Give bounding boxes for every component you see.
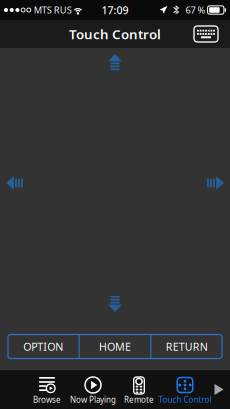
staticText: RETURN xyxy=(166,339,208,354)
staticText: Now Playing xyxy=(70,394,116,405)
button[interactable]: Touch Control xyxy=(162,370,208,409)
staticText: HOME xyxy=(99,339,131,354)
button[interactable]: OPTION xyxy=(8,334,78,358)
staticText: OPTION xyxy=(23,339,63,354)
button[interactable]: Remote xyxy=(116,370,162,409)
staticText: Touch Control xyxy=(69,25,161,43)
staticText: Touch Control xyxy=(158,394,211,405)
staticText: 17:09 xyxy=(101,3,128,17)
button[interactable]: Now Playing xyxy=(70,370,116,409)
button[interactable]: RETURN xyxy=(151,334,222,358)
button[interactable]: More tabs xyxy=(208,370,230,409)
staticText: Remote xyxy=(124,394,154,405)
staticText: 67 % xyxy=(186,4,206,16)
staticText: MTS RUS xyxy=(34,4,72,16)
staticText: Browse xyxy=(33,394,61,405)
button[interactable]: HOME xyxy=(80,334,150,358)
button[interactable]: Keyboard xyxy=(187,22,225,46)
button[interactable]: Browse xyxy=(24,370,70,409)
